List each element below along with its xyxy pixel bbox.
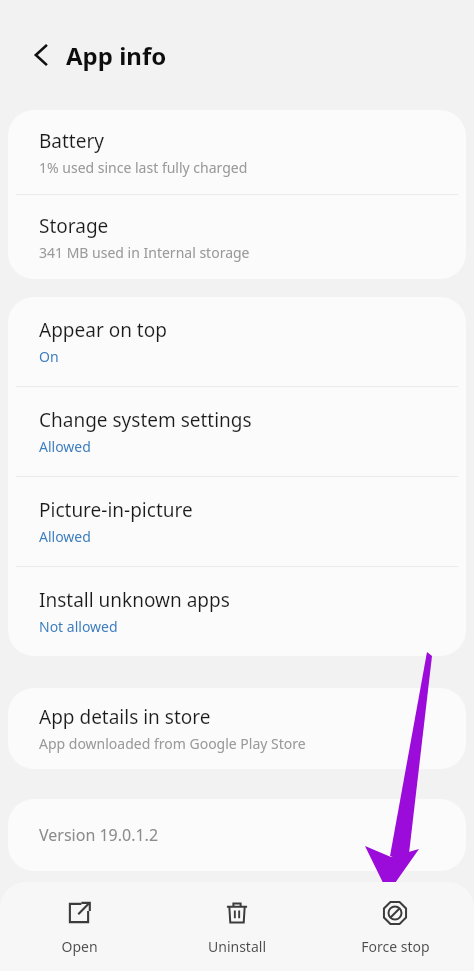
staticText: On	[39, 347, 59, 366]
button[interactable]: Uninstall	[158, 892, 316, 962]
button[interactable]: App details in store	[8, 688, 466, 769]
button[interactable]: Version 19.0.1.2	[8, 799, 466, 871]
staticText: 341 MB used in Internal storage	[39, 243, 250, 262]
other: Open	[64, 898, 94, 928]
other: Force stop	[380, 898, 410, 928]
button[interactable]: Back	[22, 35, 62, 75]
staticText: Change system settings	[39, 407, 252, 433]
button[interactable]: Open	[0, 892, 158, 962]
button[interactable]: Install unknown apps	[8, 567, 466, 656]
staticText: Uninstall	[208, 937, 266, 956]
staticText: Not allowed	[39, 617, 118, 636]
button[interactable]: Change system settings	[8, 387, 466, 477]
staticText: Version 19.0.1.2	[39, 824, 159, 846]
staticText: Picture-in-picture	[39, 497, 193, 523]
staticText: Allowed	[39, 437, 91, 456]
other: Uninstall	[222, 898, 252, 928]
staticText: App details in store	[39, 704, 211, 730]
button[interactable]: Picture-in-picture	[8, 477, 466, 567]
staticText: Open	[61, 937, 98, 956]
button[interactable]: Appear on top	[8, 297, 466, 387]
staticText: Allowed	[39, 527, 91, 546]
button[interactable]: Battery	[8, 110, 466, 195]
staticText: Install unknown apps	[39, 587, 230, 613]
staticText: Battery	[39, 128, 104, 154]
staticText: Storage	[39, 213, 109, 239]
staticText: App info	[66, 39, 167, 72]
button[interactable]: Storage	[8, 195, 466, 279]
staticText: 1% used since last fully charged	[39, 158, 248, 177]
button[interactable]: Force stop	[316, 892, 474, 962]
staticText: Appear on top	[39, 317, 167, 343]
staticText: App downloaded from Google Play Store	[39, 734, 306, 753]
staticText: Force stop	[361, 937, 430, 956]
